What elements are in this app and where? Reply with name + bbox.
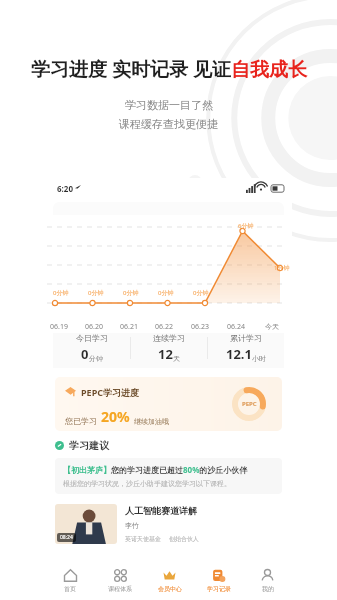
staticText: 06.19 (50, 322, 68, 332)
staticText: 学习进度 实时记录 见证自我成长 (31, 56, 307, 82)
staticText: PEPC学习进度 (81, 386, 139, 398)
staticText: 06.21 (120, 322, 138, 332)
staticText: 首页 (64, 585, 76, 593)
button[interactable]: 【初出茅庐】您的学习进度已超过80%的沙丘小伙伴 (63, 464, 274, 488)
staticText: 06.20 (85, 322, 103, 332)
staticText: 天 (173, 354, 180, 363)
staticText: 12.1 (226, 345, 252, 363)
staticText: 人工智能赛道详解 (125, 505, 197, 516)
staticText: 0分钟 (53, 289, 69, 297)
staticText: 0分钟 (88, 289, 104, 297)
staticText: 【初出茅庐】您的学习进度已超过80%的沙丘小伙伴 (63, 464, 248, 475)
staticText: 学习记录 (207, 585, 231, 593)
button[interactable]: 学习记录 (194, 560, 243, 600)
button[interactable]: 08:24 (55, 504, 282, 544)
staticText: 0分钟 (123, 289, 139, 297)
staticText: PEPC (242, 400, 257, 408)
staticText: 继续加油哦 (134, 417, 169, 426)
staticText: 您已学习 (65, 416, 97, 426)
staticText: 创始合伙人 (169, 535, 199, 543)
staticText: 20% (101, 407, 130, 426)
staticText: 小时 (252, 354, 266, 363)
staticText: 英诺天使基金 (125, 535, 161, 543)
staticText: 根据您的学习状况，沙丘小助手建议您学习以下课程。 (63, 479, 231, 488)
staticText: 0 (81, 345, 89, 363)
staticText: 今天 (265, 322, 279, 331)
staticText: 1分钟 (274, 264, 290, 272)
staticText: 学习数据一目了然 (125, 98, 213, 112)
staticText: 06.22 (155, 322, 173, 332)
staticText: 我的 (262, 585, 274, 593)
staticText: 6:20 (57, 183, 73, 194)
staticText: 课程体系 (108, 585, 132, 593)
staticText: 课程缓存查找更便捷 (119, 117, 218, 131)
staticText: 08:24 (60, 534, 73, 541)
staticText: 学习建议 (69, 439, 109, 452)
button[interactable]: 会员中心 (145, 560, 194, 600)
staticText: 会员中心 (158, 585, 182, 593)
staticText: 06.23 (191, 322, 209, 332)
staticText: 06.24 (227, 322, 245, 332)
staticText: 今日学习 (76, 333, 108, 343)
staticText: 12 (158, 345, 173, 363)
staticText: 分钟 (89, 354, 103, 363)
staticText: 李竹 (125, 521, 139, 530)
button[interactable]: 我的 (243, 560, 292, 600)
button[interactable]: PEPC学习进度 (55, 377, 282, 431)
staticText: 连续学习 (153, 333, 185, 343)
staticText: 0分钟 (158, 289, 174, 297)
button[interactable]: 首页 (45, 560, 95, 600)
button[interactable]: 课程体系 (95, 560, 145, 600)
staticText: 6分钟 (238, 222, 254, 230)
staticText: 累计学习 (230, 333, 262, 343)
staticText: 0分钟 (193, 289, 209, 297)
